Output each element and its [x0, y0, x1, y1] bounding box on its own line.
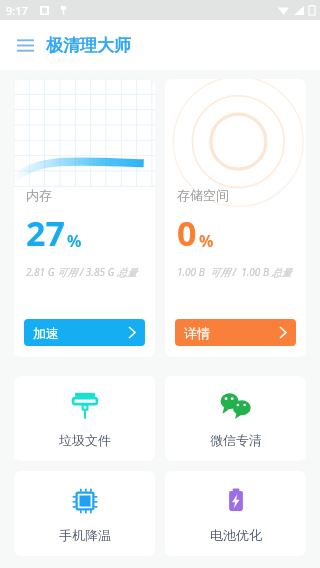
staticText: 存储空间: [177, 187, 229, 203]
button[interactable]: 详情: [175, 319, 296, 346]
staticText: 微信专清: [210, 432, 262, 448]
staticText: 极清理大师: [46, 35, 131, 56]
button[interactable]: Menu: [10, 30, 40, 60]
staticText: 详情: [184, 325, 210, 341]
staticText: 27: [26, 210, 65, 256]
staticText: 加速: [33, 325, 59, 341]
button[interactable]: 垃圾文件: [14, 376, 155, 461]
button[interactable]: 电池优化: [165, 471, 306, 556]
staticText: %: [67, 230, 82, 252]
staticText: 2.81 G 可用 / 3.85 G 总量: [26, 265, 137, 279]
staticText: 垃圾文件: [59, 432, 111, 448]
staticText: 0: [177, 210, 197, 256]
staticText: %: [199, 230, 214, 252]
button[interactable]: 手机降温: [14, 471, 155, 556]
button[interactable]: 加速: [24, 319, 145, 346]
staticText: 电池优化: [210, 527, 262, 543]
staticText: 内存: [26, 187, 52, 203]
staticText: 手机降温: [59, 527, 111, 543]
staticText: 1.00 B 可用 / 1.00 B 总量: [177, 265, 292, 279]
staticText: 9:17: [6, 3, 28, 18]
button[interactable]: 微信专清: [165, 376, 306, 461]
